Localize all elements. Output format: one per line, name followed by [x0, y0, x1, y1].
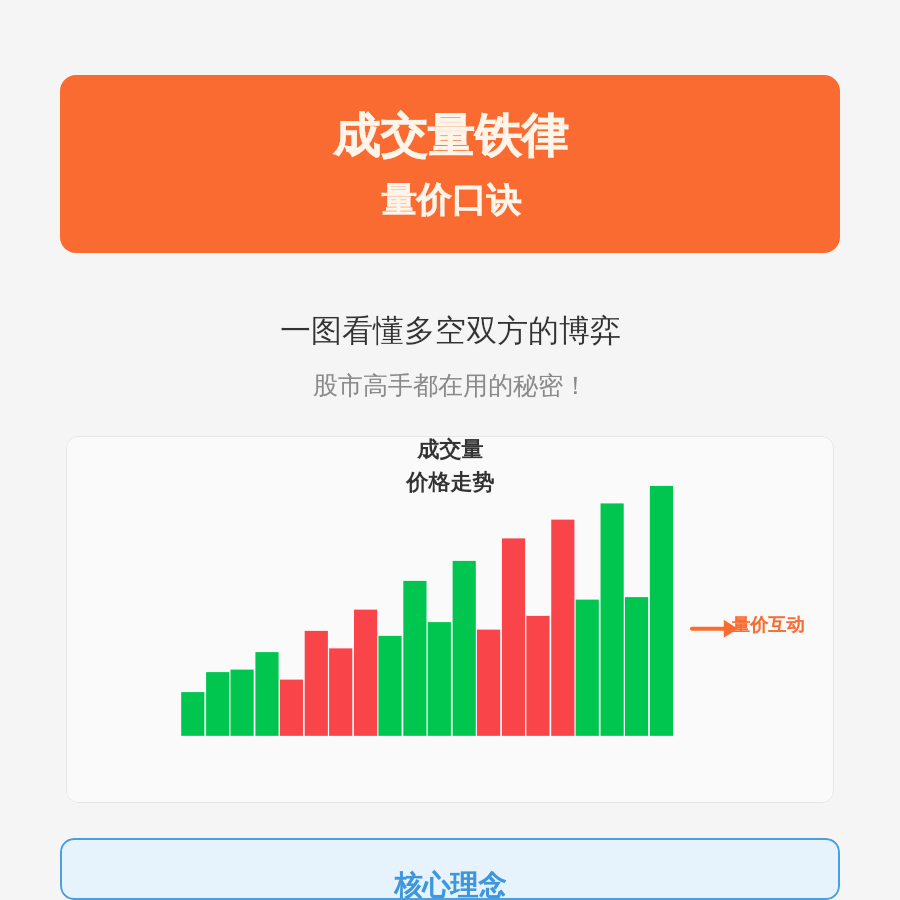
- other: Volume and price chart: [66, 436, 834, 803]
- button[interactable]: Volume and price chart: [66, 436, 834, 803]
- staticText: 量价互动: [732, 614, 804, 637]
- staticText: 股市高手都在用的秘密！: [313, 370, 588, 401]
- staticText: 成交量铁律: [333, 107, 568, 166]
- button[interactable]: 核心理念: [60, 838, 840, 900]
- staticText: 成交量: [417, 436, 483, 464]
- button[interactable]: 成交量铁律: [60, 75, 840, 253]
- staticText: 一图看懂多空双方的博弈: [280, 311, 621, 350]
- staticText: 量价口诀: [381, 178, 521, 222]
- staticText: 核心理念: [394, 868, 506, 900]
- staticText: 价格走势: [406, 469, 494, 497]
